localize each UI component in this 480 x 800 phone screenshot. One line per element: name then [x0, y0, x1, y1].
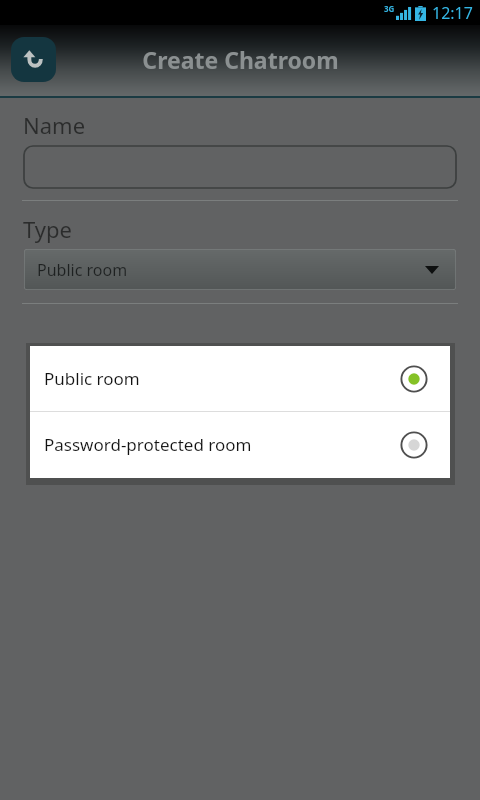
staticText: Create Chatroom — [142, 44, 339, 75]
button[interactable]: Public room — [30, 346, 450, 411]
staticText: Public room — [44, 367, 140, 390]
staticText: Name — [23, 110, 86, 140]
staticText: Password-protected room — [44, 433, 252, 456]
button[interactable]: Public room — [24, 249, 456, 290]
button[interactable]: Password-protected room — [30, 412, 450, 477]
button[interactable] — [24, 146, 456, 188]
staticText: 12:17 — [432, 2, 473, 24]
staticText: Public room — [37, 259, 128, 281]
staticText: Type — [23, 214, 72, 244]
staticText: 3G — [384, 3, 395, 14]
button[interactable]: Back — [11, 37, 56, 82]
